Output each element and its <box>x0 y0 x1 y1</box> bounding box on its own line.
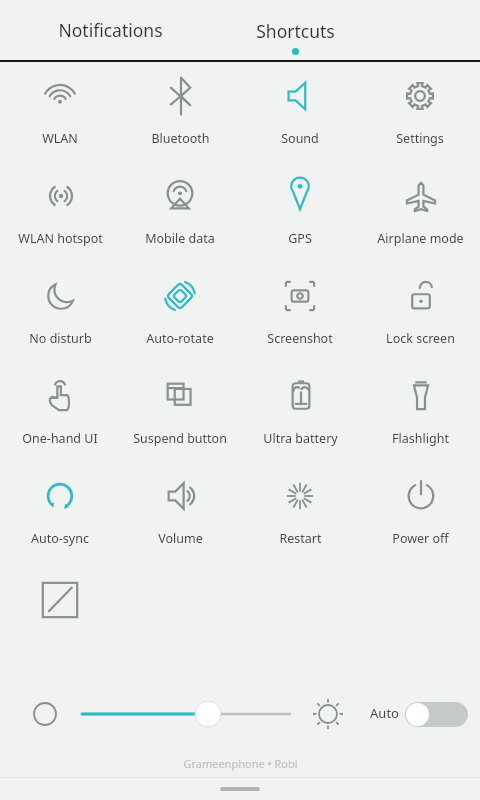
staticText: One-hand UI <box>22 430 98 447</box>
staticText: Grameenphone • Robi <box>183 756 298 771</box>
button[interactable]: WLAN hotspot <box>0 162 120 262</box>
button[interactable]: Bluetooth <box>120 62 240 162</box>
staticText: Auto <box>370 704 399 722</box>
staticText: Sound <box>281 130 319 147</box>
button[interactable]: Ultra battery <box>240 362 360 462</box>
button[interactable]: Lock screen <box>360 262 480 362</box>
button[interactable]: Power off <box>360 462 480 562</box>
staticText: WLAN <box>42 130 78 147</box>
button[interactable]: GPS <box>240 162 360 262</box>
staticText: Lock screen <box>386 330 455 347</box>
button[interactable]: Auto-rotate <box>120 262 240 362</box>
button[interactable]: Auto-sync <box>0 462 120 562</box>
button[interactable]: Suspend button <box>120 362 240 462</box>
staticText: Flashlight <box>392 430 449 447</box>
button[interactable]: Notifications <box>20 0 200 60</box>
staticText: Airplane mode <box>377 230 464 247</box>
staticText: Power off <box>392 530 449 547</box>
button[interactable]: Restart <box>240 462 360 562</box>
button[interactable]: Flashlight <box>360 362 480 462</box>
staticText: Volume <box>158 530 203 547</box>
button[interactable]: Sound <box>240 62 360 162</box>
button[interactable]: One-hand UI <box>0 362 120 462</box>
staticText: No disturb <box>29 330 92 347</box>
staticText: Auto-rotate <box>146 330 214 347</box>
staticText: GPS <box>288 230 312 247</box>
button[interactable]: Volume <box>120 462 240 562</box>
staticText: Notifications <box>58 18 163 42</box>
button[interactable]: Shortcuts <box>215 0 375 60</box>
button[interactable]: No disturb <box>0 262 120 362</box>
staticText: Mobile data <box>145 230 215 247</box>
staticText: Ultra battery <box>263 430 338 447</box>
staticText: Shortcuts <box>256 19 335 43</box>
staticText: Auto-sync <box>31 530 89 547</box>
button[interactable]: Mobile data <box>120 162 240 262</box>
button[interactable]: Screenshot <box>240 262 360 362</box>
button[interactable]: Settings <box>360 62 480 162</box>
button[interactable]: Edit shortcuts <box>38 578 82 622</box>
button[interactable]: Airplane mode <box>360 162 480 262</box>
staticText: Screenshot <box>267 330 333 347</box>
staticText: WLAN hotspot <box>18 230 103 247</box>
button[interactable]: WLAN <box>0 62 120 162</box>
staticText: Settings <box>396 130 444 147</box>
staticText: Suspend button <box>133 430 227 447</box>
staticText: Bluetooth <box>151 130 210 147</box>
button[interactable]: Auto brightness toggle <box>405 702 468 727</box>
staticText: Restart <box>279 530 322 547</box>
